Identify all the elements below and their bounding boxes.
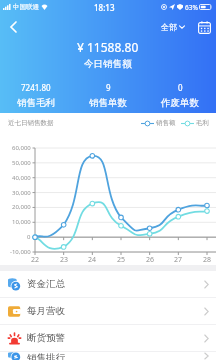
staticText: 作废单数 (161, 97, 199, 109)
staticText: 24 (88, 255, 97, 265)
staticText: 全部 (161, 22, 177, 32)
button[interactable]: 全部 (158, 19, 188, 35)
button[interactable]: 资金汇总 (0, 271, 216, 298)
staticText: 中国联通 (13, 3, 39, 11)
staticText: 20,000 (12, 203, 31, 211)
staticText: 22 (31, 255, 40, 265)
staticText: 25 (117, 255, 126, 265)
button[interactable]: 断货预警 (0, 325, 216, 352)
staticText: 0 (27, 233, 31, 241)
staticText: 63% (185, 3, 198, 12)
staticText: 18:13 (94, 2, 115, 13)
staticText: 10,000 (12, 218, 31, 226)
staticText: 销售额 (156, 119, 176, 127)
staticText: 近七日销售数据 (8, 119, 54, 127)
staticText: 毛利 (196, 119, 209, 127)
staticText: 销售单数 (89, 97, 127, 109)
staticText: 30,000 (12, 189, 31, 197)
staticText: 28 (203, 255, 212, 265)
staticText: 50,000 (12, 159, 31, 167)
staticText: 9 (106, 82, 111, 93)
staticText: 断货预警 (27, 332, 65, 344)
button[interactable]: Back (0, 14, 26, 39)
staticText: 销售排行 (27, 352, 65, 360)
button[interactable]: 销售排行 (0, 352, 216, 360)
staticText: 0 (178, 82, 183, 93)
staticText: 27 (174, 255, 183, 265)
button[interactable]: Calendar (192, 15, 216, 39)
staticText: 今日销售额 (84, 58, 132, 70)
staticText: 7241.80 (21, 82, 51, 93)
staticText: 23 (60, 255, 69, 265)
staticText: 26 (146, 255, 155, 265)
staticText: 销售毛利 (17, 97, 55, 109)
staticText: -10,000 (10, 248, 31, 256)
staticText: 每月营收 (27, 305, 65, 317)
staticText: 40,000 (12, 174, 31, 182)
staticText: ¥ 11588.80 (77, 39, 139, 55)
button[interactable]: 每月营收 (0, 298, 216, 325)
staticText: 60,000 (12, 144, 31, 152)
staticText: 资金汇总 (27, 278, 65, 290)
